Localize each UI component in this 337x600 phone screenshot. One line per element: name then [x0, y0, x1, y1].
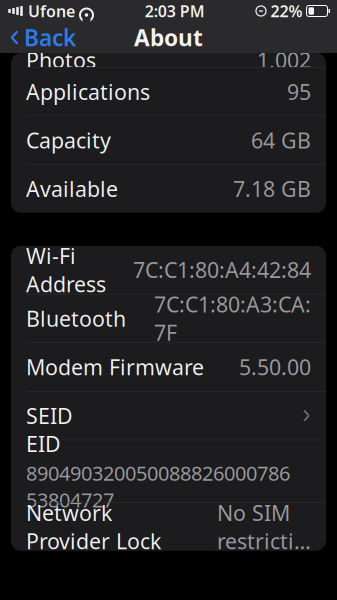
staticText: Wi-Fi Address — [26, 241, 106, 298]
staticText: About — [134, 22, 203, 52]
staticText: 1,002 — [257, 46, 311, 74]
button[interactable]: Modem Firmware — [11, 343, 326, 391]
staticText: Network Provider Lock — [26, 498, 161, 555]
staticText: 5.50.00 — [239, 353, 311, 381]
staticText: SEID — [26, 401, 73, 430]
staticText: 64 GB — [251, 126, 311, 154]
button[interactable]: SEID — [11, 392, 326, 440]
button[interactable]: Applications — [11, 68, 326, 116]
button[interactable]: Wi-Fi Address — [11, 246, 326, 294]
staticText: Applications — [26, 77, 150, 106]
staticText: 7C:C1:80:A4:42:84 — [133, 256, 311, 284]
staticText: No SIM restricti… — [217, 498, 311, 555]
staticText: 2:03 PM — [145, 0, 205, 22]
staticText: Available — [26, 175, 118, 203]
button[interactable]: Bluetooth — [11, 294, 326, 342]
button[interactable]: Back — [0, 17, 76, 57]
button[interactable]: Capacity — [11, 116, 326, 164]
button[interactable]: Available — [11, 165, 326, 213]
staticText: 22% — [270, 0, 302, 22]
staticText: Modem Firmware — [26, 353, 204, 381]
staticText: Back — [24, 22, 76, 52]
staticText: 89049032005008882600078653804727 — [26, 460, 290, 513]
staticText: Capacity — [26, 126, 111, 154]
staticText: Ufone — [28, 0, 75, 22]
staticText: 7C:C1:80:A3:CA:7F — [154, 290, 311, 347]
staticText: 7.18 GB — [233, 175, 311, 203]
button[interactable]: Network Provider Lock — [11, 503, 326, 551]
staticText: Photos — [26, 46, 96, 74]
staticText: EID — [26, 429, 61, 458]
staticText: 95 — [287, 77, 311, 106]
button[interactable]: EID — [11, 440, 326, 502]
staticText: Bluetooth — [26, 304, 126, 332]
